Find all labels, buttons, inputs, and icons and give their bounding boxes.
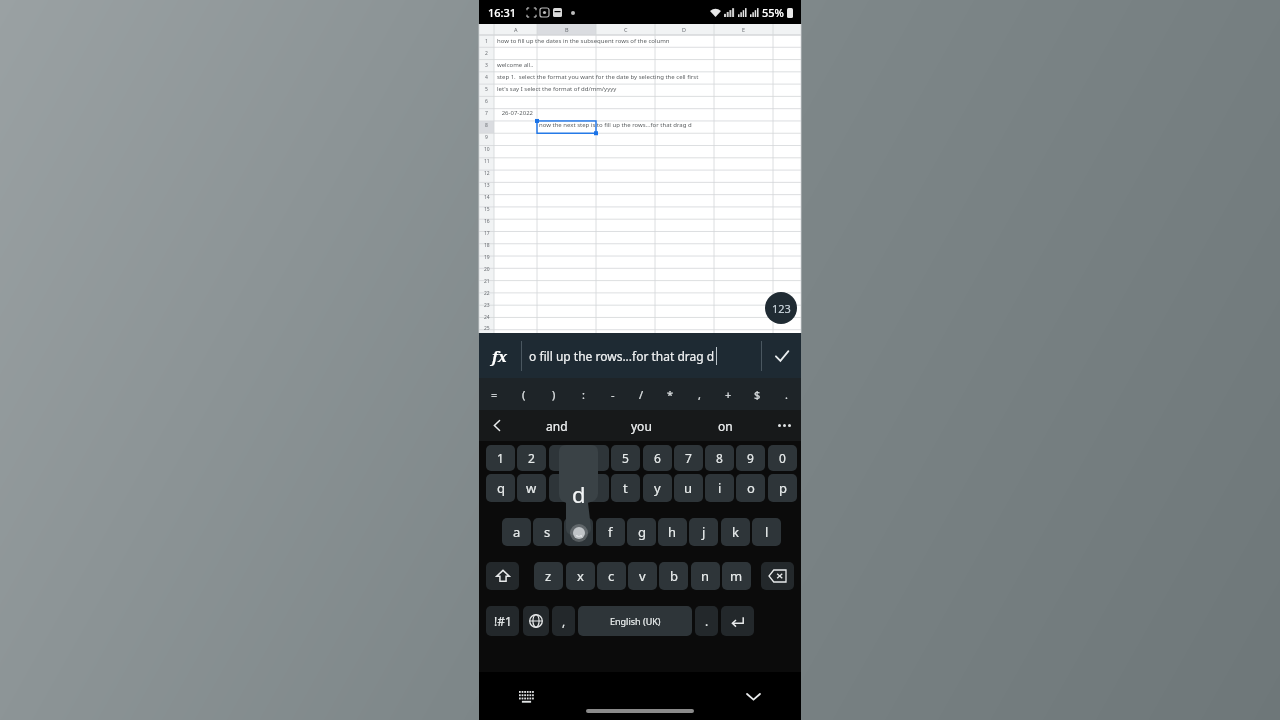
button[interactable]: Hide keyboard — [741, 684, 765, 708]
staticText: 0 — [779, 450, 786, 466]
staticText: + — [725, 387, 732, 402]
button[interactable]: Shift — [486, 562, 519, 590]
staticText: , — [698, 387, 701, 402]
button[interactable]: a — [502, 518, 531, 546]
staticText: - — [611, 387, 615, 402]
button[interactable]: . — [695, 606, 718, 636]
button[interactable]: $ — [743, 378, 772, 410]
button[interactable]: More — [767, 410, 801, 441]
staticText: 14 — [484, 194, 490, 201]
button[interactable]: 3 — [549, 445, 578, 471]
staticText: k — [732, 523, 739, 541]
button[interactable]: , — [552, 606, 575, 636]
button[interactable]: o fill up the rows...for that drag d — [529, 333, 761, 378]
button[interactable]: 0 — [768, 445, 797, 471]
button[interactable]: r — [580, 474, 609, 502]
button[interactable]: Accept — [762, 333, 801, 378]
staticText: 21 — [484, 278, 490, 285]
button[interactable]: v — [628, 562, 657, 590]
staticText: 16 — [484, 218, 490, 225]
staticText: 24 — [484, 314, 490, 321]
button[interactable]: 5 — [611, 445, 640, 471]
staticText: !#1 — [494, 613, 512, 629]
button[interactable]: b — [659, 562, 688, 590]
button[interactable]: on — [683, 410, 767, 441]
button[interactable]: English (UK) — [578, 606, 692, 636]
staticText: D — [682, 26, 687, 33]
button[interactable]: Previous — [479, 410, 515, 441]
staticText: 26-07-2022 — [497, 109, 534, 117]
button[interactable]: t — [611, 474, 640, 502]
button[interactable]: , — [685, 378, 714, 410]
staticText: 23 — [484, 302, 490, 309]
button[interactable]: - — [598, 378, 627, 410]
button[interactable]: f — [596, 518, 625, 546]
button[interactable]: = — [479, 378, 509, 410]
button[interactable]: Backspace — [761, 562, 794, 590]
staticText: step 1. select the format you want for t… — [497, 73, 699, 81]
staticText: 9 — [485, 134, 488, 141]
button[interactable]: 1 — [486, 445, 515, 471]
button[interactable]: ( — [509, 378, 539, 410]
button[interactable]: 4 — [580, 445, 609, 471]
staticText: h — [668, 523, 677, 541]
button[interactable]: k — [721, 518, 750, 546]
staticText: 2 — [528, 450, 535, 466]
button[interactable]: d — [564, 518, 593, 546]
button[interactable]: i — [705, 474, 734, 502]
button[interactable]: * — [656, 378, 685, 410]
button[interactable]: 9 — [736, 445, 765, 471]
button[interactable]: e — [549, 474, 578, 502]
staticText: 7 — [485, 110, 488, 117]
staticText: 3 — [485, 62, 488, 69]
button[interactable]: x — [566, 562, 595, 590]
staticText: = — [491, 387, 498, 402]
button[interactable]: w — [517, 474, 546, 502]
button[interactable]: 8 — [705, 445, 734, 471]
button[interactable]: 6 — [643, 445, 672, 471]
button[interactable]: l — [752, 518, 781, 546]
button[interactable]: z — [534, 562, 563, 590]
staticText: 5 — [622, 450, 629, 466]
button[interactable]: ) — [539, 378, 569, 410]
staticText: 1 — [497, 450, 504, 466]
button[interactable]: u — [674, 474, 703, 502]
button[interactable]: Keyboard layout — [515, 685, 537, 707]
button[interactable]: Functions — [479, 333, 521, 378]
button[interactable]: y — [643, 474, 672, 502]
staticText: you — [631, 418, 652, 434]
button[interactable]: m — [722, 562, 751, 590]
button[interactable]: g — [627, 518, 656, 546]
button[interactable]: c — [597, 562, 626, 590]
button[interactable]: h — [658, 518, 687, 546]
staticText: / — [639, 387, 644, 402]
button[interactable]: q — [486, 474, 515, 502]
button[interactable]: + — [714, 378, 743, 410]
staticText: how to fill up the dates in the subseque… — [497, 37, 670, 45]
button[interactable]: n — [691, 562, 720, 590]
button[interactable]: and — [515, 410, 599, 441]
button[interactable]: Language — [523, 606, 549, 636]
button[interactable]: / — [627, 378, 656, 410]
button[interactable]: Enter — [721, 606, 754, 636]
button[interactable]: 2 — [517, 445, 546, 471]
button[interactable]: : — [569, 378, 598, 410]
button[interactable]: Switch to numbers — [765, 292, 797, 324]
button[interactable]: you — [599, 410, 683, 441]
staticText: p — [779, 479, 787, 497]
staticText: $ — [754, 387, 761, 402]
staticText: 15 — [484, 206, 490, 213]
button[interactable]: !#1 — [486, 606, 519, 636]
staticText: d — [575, 523, 583, 541]
button[interactable]: p — [768, 474, 797, 502]
staticText: let's say I select the format of dd/mm/y… — [497, 85, 617, 93]
staticText: 7 — [685, 450, 692, 466]
staticText: * — [667, 387, 674, 402]
button[interactable]: j — [689, 518, 718, 546]
button[interactable]: s — [533, 518, 562, 546]
button[interactable]: o — [736, 474, 765, 502]
button[interactable]: 7 — [674, 445, 703, 471]
button[interactable]: . — [772, 378, 801, 410]
